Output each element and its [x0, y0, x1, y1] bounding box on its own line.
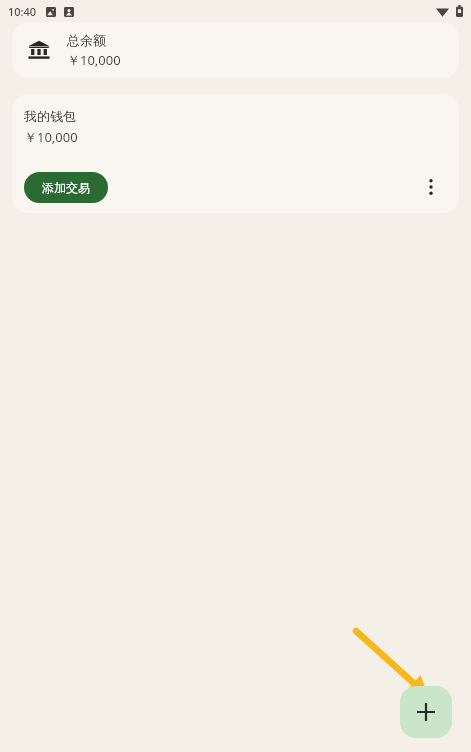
- staticText: 添加交易: [42, 180, 90, 195]
- button[interactable]: 添加交易: [24, 172, 108, 203]
- button[interactable]: More options: [411, 167, 451, 207]
- staticText: 总余额: [67, 32, 106, 48]
- button[interactable]: Add: [400, 686, 452, 738]
- button[interactable]: 我的钱包: [12, 94, 459, 213]
- button[interactable]: 总余额: [12, 22, 459, 78]
- staticText: 10:40: [8, 4, 37, 19]
- staticText: 我的钱包: [24, 108, 76, 124]
- staticText: ￥10,000: [24, 128, 78, 146]
- staticText: ￥10,000: [67, 51, 121, 69]
